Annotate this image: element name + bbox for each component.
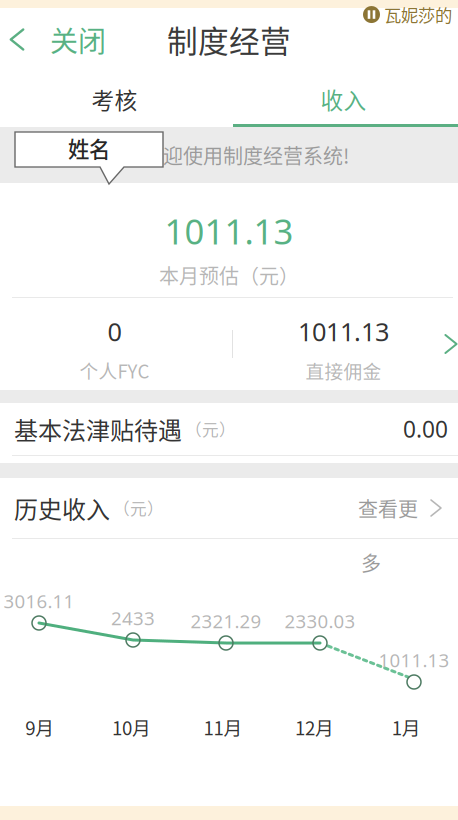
staticText: 查看更 [358,493,418,522]
staticText: 2321.29 [190,608,261,634]
staticText: 2433 [111,605,155,631]
staticText: 制度经营 [167,17,291,62]
staticText: 3016.11 [3,588,74,614]
staticText: 0.00 [403,414,448,444]
staticText: 11月 [203,713,242,740]
staticText: 直接佣金 [305,357,381,384]
staticText: 个人FYC [79,357,149,384]
staticText: 1月 [392,713,421,740]
staticText: （元） [185,417,236,441]
staticText: 基本法津贴待遇 [14,412,182,446]
staticText: 10月 [112,713,151,740]
button[interactable]: 直接佣金详情 [444,331,458,357]
button[interactable]: 考核 [0,71,229,127]
staticText: 多 [361,548,381,577]
button[interactable]: 关闭 [0,15,120,63]
staticText: 收入 [320,83,366,115]
staticText: 瓦妮莎的 [384,2,452,27]
button[interactable]: 查看更 [358,493,454,522]
staticText: 历史收入 [14,491,110,525]
staticText: 0 [107,314,121,349]
button[interactable]: 收入 [229,71,458,127]
staticText: 本月预估（元） [159,261,299,290]
staticText: 2330.03 [284,608,355,634]
staticText: 9月 [25,713,54,740]
staticText: （元） [113,496,164,520]
staticText: 12月 [295,713,334,740]
staticText: 姓名 [68,133,110,163]
staticText: 1011.13 [378,647,449,673]
staticText: 欢迎使用制度经营系统! [143,140,349,169]
staticText: 考核 [91,83,137,115]
staticText: 1011.13 [298,314,389,349]
staticText: 1011.13 [164,207,293,255]
staticText: 关闭 [50,19,106,60]
